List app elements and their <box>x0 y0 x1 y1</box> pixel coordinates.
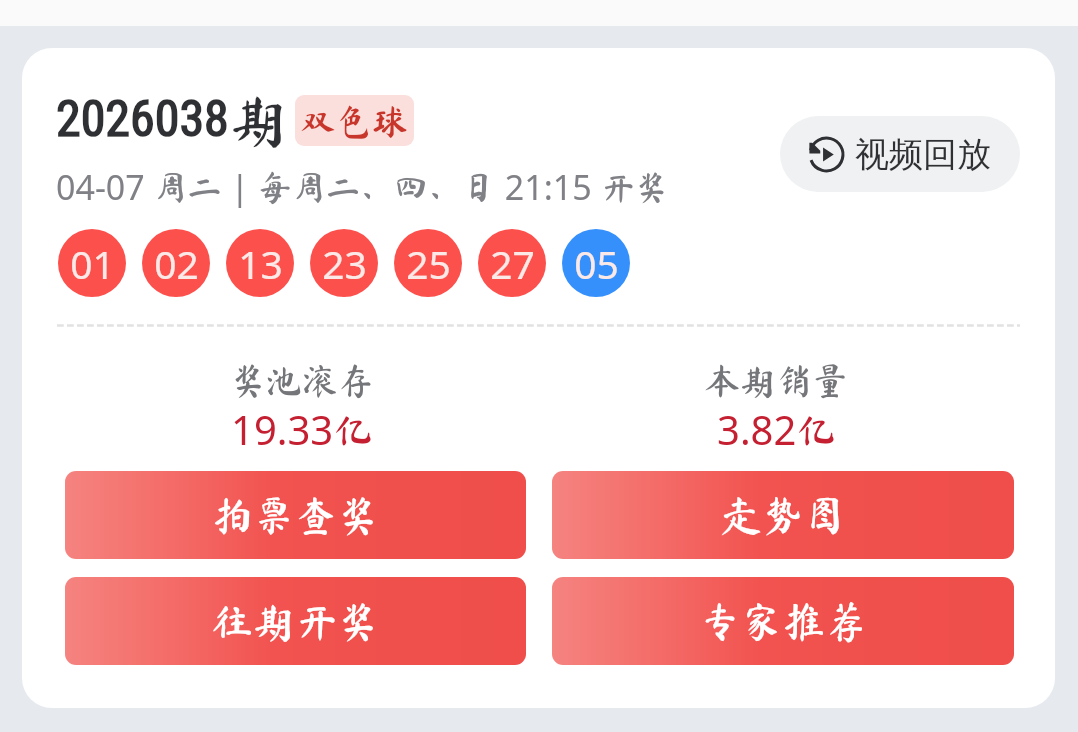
staticText: 05 <box>574 237 619 290</box>
staticText: 3.82亿 <box>717 402 837 456</box>
staticText: 13 <box>238 237 283 290</box>
staticText: 双色球 <box>300 103 409 139</box>
staticText: 奖池滚存 <box>230 362 375 398</box>
staticText: 本期销量 <box>704 362 849 398</box>
button[interactable]: 专家推荐 <box>552 577 1014 665</box>
staticText: 往期开奖 <box>211 600 380 642</box>
staticText: 走势图 <box>720 494 847 536</box>
button[interactable]: Video replay <box>780 116 1020 192</box>
staticText: 19.33亿 <box>231 402 374 456</box>
staticText: 01 <box>70 237 115 290</box>
button[interactable]: 双色球 <box>295 95 414 146</box>
staticText: 27 <box>490 237 535 290</box>
staticText: 04-07 周二 | 每周二、四、日 21:15 开奖 <box>56 164 669 210</box>
button[interactable]: 往期开奖 <box>65 577 526 665</box>
staticText: 25 <box>406 237 451 290</box>
staticText: 拍票查奖 <box>211 494 380 536</box>
button[interactable]: 走势图 <box>552 471 1014 559</box>
staticText: 2026038 <box>56 90 229 149</box>
button[interactable]: 拍票查奖 <box>65 471 526 559</box>
staticText: 期 <box>230 90 289 148</box>
staticText: 02 <box>154 237 199 290</box>
other: Video replay <box>809 137 844 172</box>
staticText: 专家推荐 <box>699 600 868 642</box>
staticText: 23 <box>322 237 367 290</box>
staticText: 视频回放 <box>855 133 991 176</box>
